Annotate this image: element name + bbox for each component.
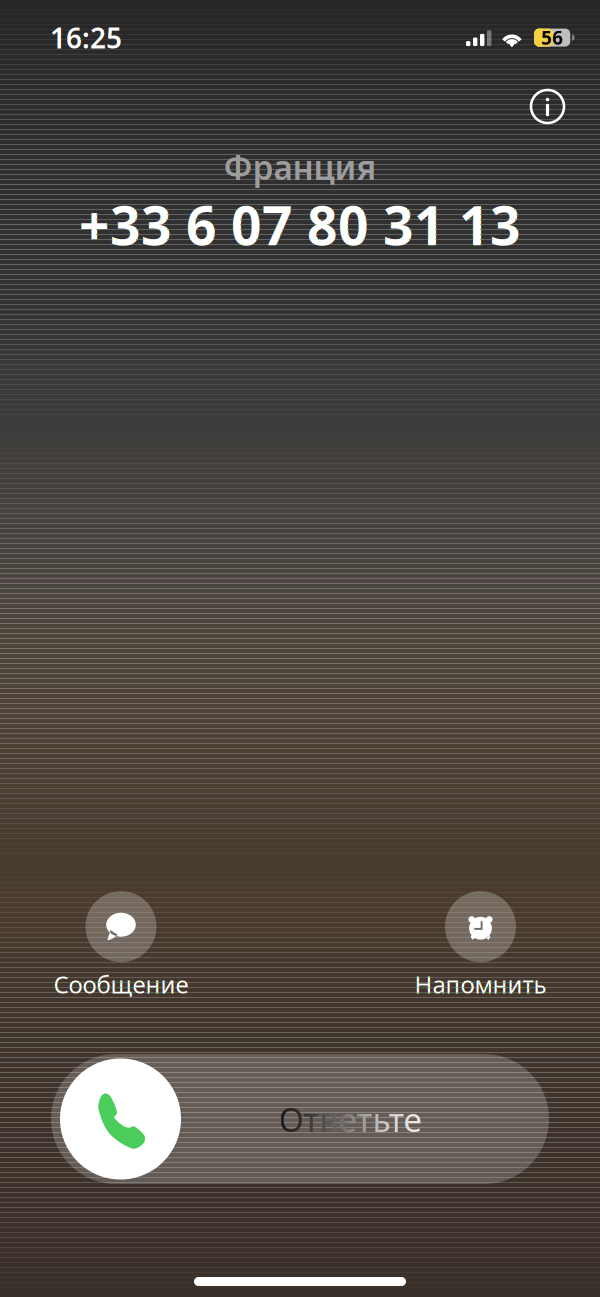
staticText: Ответьте	[278, 1097, 421, 1141]
staticText: Ответьте	[278, 1097, 421, 1141]
staticText: Ответьте	[278, 1097, 421, 1141]
staticText: Ответьте	[278, 1097, 421, 1141]
staticText: Ответьте	[278, 1097, 421, 1141]
staticText: Ответьте	[278, 1097, 421, 1141]
staticText: Ответьте	[278, 1097, 421, 1141]
button[interactable]: Напомнить	[385, 891, 575, 1000]
staticText: Франция	[223, 145, 376, 189]
staticText: Ответьте	[278, 1097, 421, 1141]
staticText: Ответьте	[278, 1097, 421, 1141]
staticText: Ответьте	[278, 1097, 421, 1141]
staticText: Ответьте	[278, 1097, 421, 1141]
staticText: Напомнить	[414, 968, 546, 1000]
staticText: Ответьте	[278, 1097, 421, 1141]
staticText: Ответьте	[278, 1097, 421, 1141]
staticText: Ответьте	[278, 1097, 421, 1141]
staticText: Ответьте	[278, 1097, 421, 1141]
staticText: Ответьте	[278, 1097, 421, 1141]
staticText: Ответьте	[278, 1097, 421, 1141]
staticText: Ответьте	[278, 1097, 421, 1141]
staticText: Ответьте	[278, 1097, 421, 1141]
staticText: +33 6 07 80 31 13	[79, 189, 521, 260]
staticText: Ответьте	[278, 1097, 421, 1141]
staticText: Ответьте	[278, 1097, 421, 1141]
staticText: Сообщение	[53, 968, 188, 1000]
staticText: Ответьте	[278, 1097, 421, 1141]
button[interactable]: Answer	[51, 1058, 181, 1179]
staticText: Ответьте	[278, 1097, 421, 1141]
staticText: Ответьте	[278, 1097, 421, 1141]
staticText: Ответьте	[278, 1097, 421, 1141]
staticText: Ответьте	[278, 1097, 421, 1141]
staticText: Ответьте	[278, 1097, 421, 1141]
staticText: Ответьте	[278, 1097, 421, 1141]
staticText: 16:25	[50, 19, 122, 56]
button[interactable]: Сообщение	[26, 891, 216, 1000]
staticText: Ответьте	[278, 1097, 421, 1141]
staticText: Ответьте	[278, 1097, 421, 1141]
staticText: Ответьте	[278, 1097, 421, 1141]
staticText: 56	[541, 25, 563, 50]
staticText: Ответьте	[278, 1097, 421, 1141]
staticText: Ответьте	[278, 1097, 421, 1141]
staticText: Ответьте	[278, 1097, 421, 1141]
staticText: Ответьте	[278, 1097, 421, 1141]
staticText: Ответьте	[278, 1097, 421, 1141]
staticText: Ответьте	[278, 1097, 421, 1141]
staticText: Ответьте	[278, 1097, 421, 1141]
button[interactable]: Call details	[523, 82, 572, 131]
